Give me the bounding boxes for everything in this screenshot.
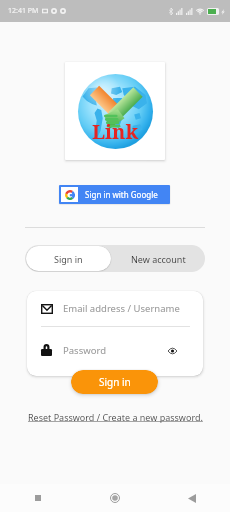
button[interactable]: New account	[112, 245, 205, 272]
button[interactable]: Show password	[168, 347, 177, 354]
staticText: New account	[131, 253, 186, 265]
staticText: Password	[63, 344, 106, 357]
button[interactable]: Sign in with Google	[59, 185, 170, 204]
button[interactable]: Password	[27, 327, 203, 373]
button[interactable]: Home	[76, 484, 153, 512]
staticText: Sign in	[99, 375, 131, 389]
staticText: Email address / Username	[63, 302, 180, 315]
button[interactable]: Sign in	[26, 246, 111, 271]
button[interactable]: Email address / Username	[27, 291, 203, 326]
staticText: Link	[92, 118, 139, 145]
button[interactable]: Reset Password / Create a new password.	[28, 411, 203, 423]
staticText: 12:41 PM	[8, 6, 39, 16]
staticText: Sign in	[54, 253, 83, 265]
button[interactable]: Back	[153, 484, 230, 512]
staticText: Sign in with Google	[85, 189, 158, 200]
staticText: Reset Password / Create a new password.	[28, 411, 203, 423]
button[interactable]: Sign in	[71, 370, 158, 394]
button[interactable]: Recents	[0, 484, 76, 512]
